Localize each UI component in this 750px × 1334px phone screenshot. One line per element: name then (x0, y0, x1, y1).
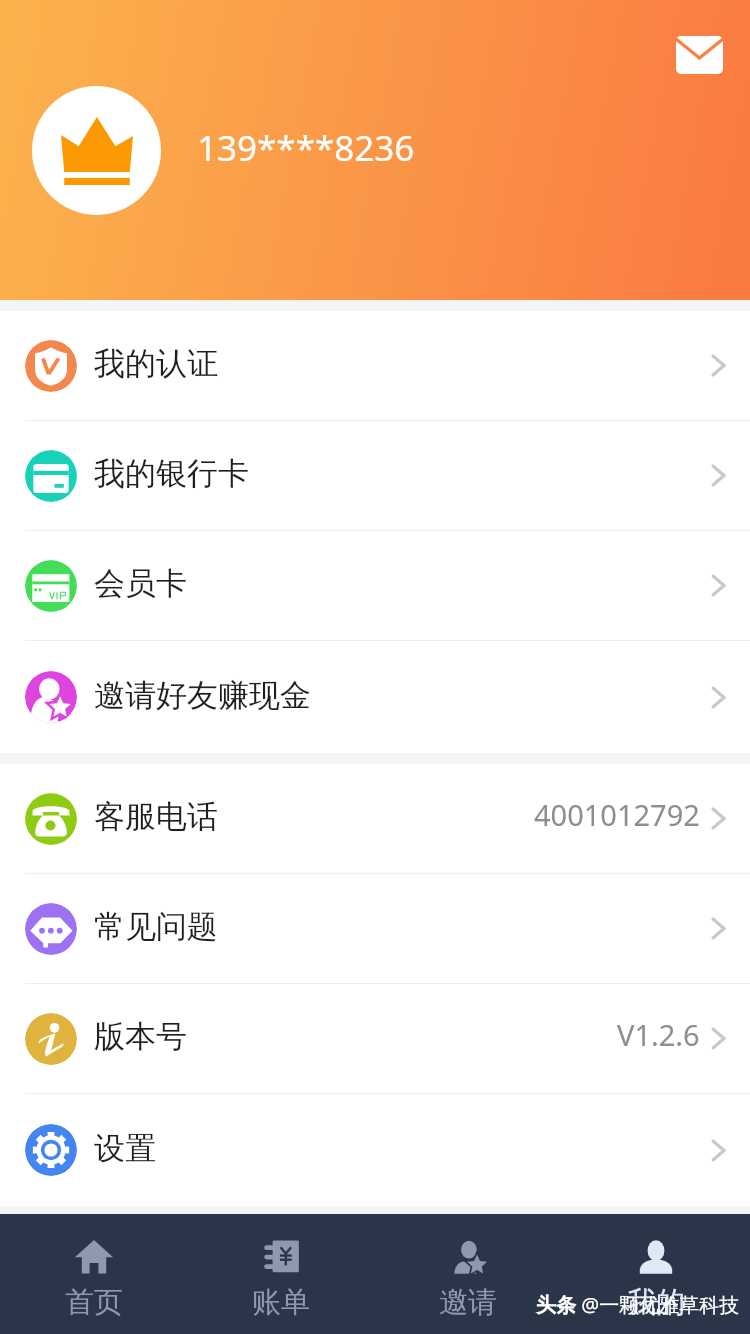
button[interactable]: Messages (664, 20, 734, 90)
staticText: 版本号 (94, 1017, 187, 1056)
button[interactable]: 账单 (187, 1214, 374, 1334)
button[interactable]: 我的认证 (0, 311, 750, 421)
staticText: 会员卡 (94, 564, 187, 603)
button[interactable]: 客服电话 (0, 764, 750, 874)
button[interactable]: Avatar (32, 86, 161, 215)
button[interactable]: 版本号 (0, 984, 750, 1094)
staticText: 账单 (252, 1284, 310, 1321)
staticText: 4001012792 (534, 795, 700, 834)
button[interactable]: 邀请好友赚现金 (0, 641, 750, 753)
button[interactable]: 邀请 (374, 1214, 562, 1334)
staticText: 邀请好友赚现金 (94, 676, 311, 715)
staticText: 设置 (94, 1129, 156, 1168)
staticText: 首页 (65, 1284, 123, 1321)
button[interactable]: 我的 (562, 1214, 750, 1334)
staticText: V1.2.6 (617, 1015, 700, 1054)
staticText: 客服电话 (94, 797, 218, 836)
staticText: 139****8236 (197, 124, 415, 172)
staticText: @一颗优雅草科技 (576, 1291, 740, 1318)
staticText: 头条 (536, 1293, 576, 1318)
staticText: 我的 (627, 1284, 685, 1321)
button[interactable]: 设置 (0, 1094, 750, 1206)
button[interactable]: 首页 (0, 1214, 187, 1334)
staticText: 常见问题 (94, 907, 218, 946)
staticText: 我的认证 (94, 344, 218, 383)
button[interactable]: 常见问题 (0, 874, 750, 984)
button[interactable]: 会员卡 (0, 531, 750, 641)
staticText: 邀请 (439, 1284, 497, 1321)
button[interactable]: 我的银行卡 (0, 421, 750, 531)
staticText: 我的银行卡 (94, 454, 249, 493)
